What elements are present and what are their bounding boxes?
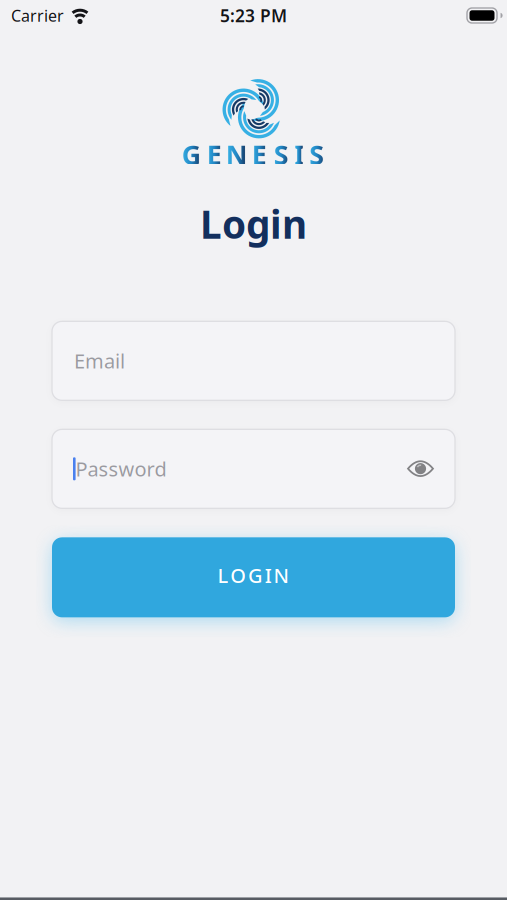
- staticText: G: [248, 562, 263, 589]
- button[interactable]: Show password: [404, 457, 437, 481]
- staticText: Email: [74, 348, 125, 374]
- staticText: 5:23 PM: [220, 4, 287, 27]
- button[interactable]: Password: [52, 429, 455, 508]
- staticText: I: [265, 562, 272, 589]
- staticText: N: [274, 562, 290, 589]
- staticText: Password: [76, 456, 167, 482]
- staticText: O: [230, 562, 246, 589]
- staticText: L: [217, 562, 228, 589]
- staticText: Carrier: [11, 5, 64, 26]
- staticText: Login: [200, 198, 307, 249]
- button[interactable]: Email: [52, 321, 455, 400]
- button[interactable]: L: [52, 537, 455, 617]
